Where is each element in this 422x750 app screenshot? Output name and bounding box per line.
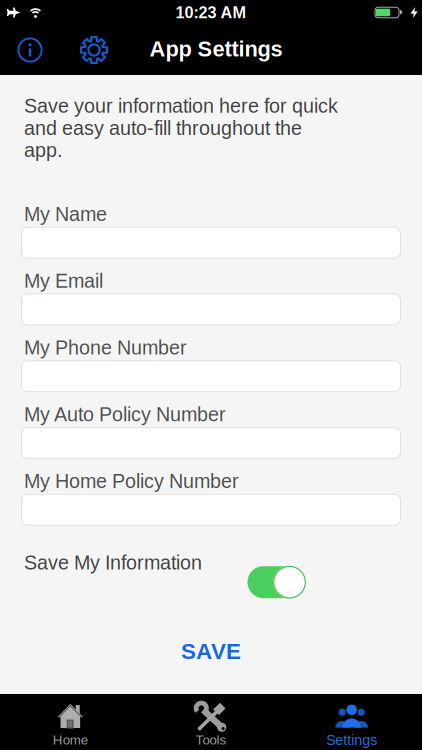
- staticText: My Auto Policy Number: [24, 403, 226, 425]
- staticText: Save your information here for quick and…: [24, 95, 338, 161]
- button[interactable]: Home: [0, 695, 141, 749]
- button[interactable]: Tools: [141, 695, 281, 749]
- button[interactable]: Settings: [281, 694, 422, 750]
- staticText: My Home Policy Number: [24, 470, 239, 492]
- button[interactable]: SAVE: [181, 639, 241, 664]
- button[interactable]: Settings: [79, 35, 109, 65]
- staticText: My Phone Number: [24, 337, 187, 359]
- staticText: Tools: [195, 733, 226, 747]
- staticText: Home: [53, 733, 88, 747]
- staticText: 10:23 AM: [175, 3, 246, 22]
- button[interactable]: Info: [16, 36, 44, 64]
- staticText: App Settings: [149, 37, 282, 61]
- staticText: My Email: [24, 270, 103, 292]
- button[interactable]: Save My Information: [247, 566, 306, 599]
- staticText: SAVE: [181, 639, 241, 664]
- staticText: Save My Information: [24, 552, 202, 574]
- staticText: Settings: [326, 732, 377, 748]
- staticText: My Name: [24, 203, 107, 225]
